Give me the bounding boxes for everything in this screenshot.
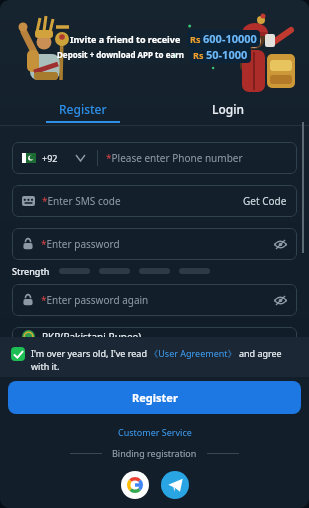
staticText: +92: [42, 152, 58, 164]
staticText: Register: [132, 390, 178, 405]
staticText: Deposit + download APP to earn: [57, 49, 185, 60]
button[interactable]: Customer Service: [0, 426, 309, 438]
button[interactable]: [121, 471, 149, 499]
staticText: *Enter password: [41, 237, 120, 251]
button[interactable]: PKR(Pakistani Rupee): [12, 327, 297, 359]
button[interactable]: Register: [8, 381, 301, 414]
staticText: Login: [212, 101, 244, 117]
staticText: Get Code: [243, 194, 287, 208]
staticText: 50-1000: [206, 47, 248, 62]
button[interactable]: Invite a friend to receive: [8, 8, 301, 88]
staticText: Rs: [193, 49, 204, 61]
staticText: PKR(Pakistani Rupee): [42, 330, 142, 344]
staticText: 600-10000: [203, 31, 257, 46]
staticText: Rs: [190, 33, 201, 45]
button[interactable]: Register: [35, 98, 131, 120]
button[interactable]: +92: [12, 142, 297, 174]
button[interactable]: *Enter password again: [12, 284, 297, 316]
staticText: *Enter SMS code: [42, 194, 121, 208]
staticText: Register: [59, 101, 107, 117]
staticText: Binding registration: [112, 447, 197, 459]
staticText: Customer Service: [118, 426, 192, 438]
button[interactable]: I'm over years old, I've read 《User Agre…: [0, 337, 309, 377]
staticText: Invite a friend to receive: [70, 33, 181, 45]
staticText: *Enter password again: [41, 293, 149, 307]
staticText: *Please enter Phone number: [106, 151, 243, 165]
staticText: I'm over years old, I've read 《User Agre…: [31, 347, 282, 373]
button[interactable]: Login: [180, 98, 276, 120]
staticText: Strength: [12, 265, 50, 277]
button[interactable]: *Enter SMS code: [12, 185, 297, 217]
button[interactable]: *Enter password: [12, 228, 297, 260]
button[interactable]: [161, 471, 189, 499]
